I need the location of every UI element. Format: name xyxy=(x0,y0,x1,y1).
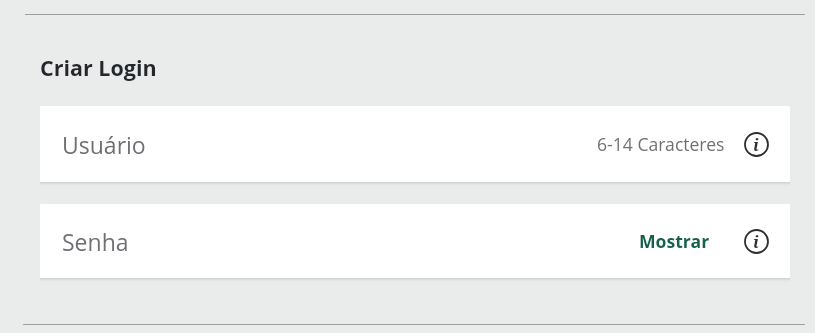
staticText: Criar Login xyxy=(40,53,157,82)
staticText: i xyxy=(753,230,759,252)
staticText: i xyxy=(753,133,759,155)
staticText: Usuário xyxy=(62,129,146,160)
button[interactable]: Informação sobre o usuário xyxy=(739,127,773,161)
staticText: 6-14 Caracteres xyxy=(597,132,725,156)
button[interactable]: Mostrar xyxy=(639,204,710,278)
button[interactable]: Informação sobre a senha xyxy=(739,224,773,258)
button[interactable]: 6-14 Caracteres xyxy=(597,106,725,182)
button[interactable]: Usuário xyxy=(40,106,790,182)
staticText: Mostrar xyxy=(639,229,710,253)
button[interactable]: Senha xyxy=(40,204,790,278)
staticText: Senha xyxy=(62,226,129,257)
